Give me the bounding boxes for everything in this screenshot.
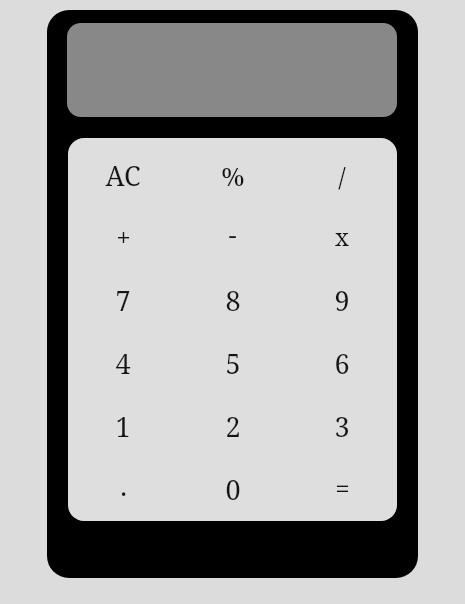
button[interactable]: x xyxy=(287,204,397,269)
button[interactable]: 0 xyxy=(178,458,287,521)
button[interactable]: 2 xyxy=(178,395,287,458)
button[interactable]: AC xyxy=(68,146,178,204)
staticText: 3 xyxy=(334,408,350,445)
staticText: 2 xyxy=(225,408,241,445)
button[interactable]: = xyxy=(287,458,397,521)
button[interactable]: Display xyxy=(67,23,397,117)
button[interactable]: 9 xyxy=(287,269,397,331)
staticText: 5 xyxy=(225,345,241,382)
staticText: 9 xyxy=(334,282,350,319)
button[interactable]: 8 xyxy=(178,269,287,331)
button[interactable]: 6 xyxy=(287,331,397,395)
button[interactable]: 1 xyxy=(68,395,178,458)
staticText: % xyxy=(221,158,245,193)
staticText: 1 xyxy=(115,408,131,445)
staticText: / xyxy=(338,158,346,193)
staticText: = xyxy=(335,470,350,505)
staticText: AC xyxy=(105,157,141,194)
button[interactable]: 3 xyxy=(287,395,397,458)
button[interactable]: / xyxy=(287,146,397,204)
staticText: 6 xyxy=(334,345,350,382)
button[interactable]: - xyxy=(178,204,287,269)
staticText: 7 xyxy=(115,282,131,319)
staticText: 0 xyxy=(225,471,241,508)
button[interactable]: 7 xyxy=(68,269,178,331)
staticText: - xyxy=(228,216,237,251)
staticText: . xyxy=(120,467,127,504)
button[interactable]: 5 xyxy=(178,331,287,395)
button[interactable]: % xyxy=(178,146,287,204)
button[interactable]: + xyxy=(68,204,178,269)
staticText: x xyxy=(335,220,349,253)
staticText: 4 xyxy=(115,345,131,382)
button[interactable]: . xyxy=(68,458,178,521)
staticText: + xyxy=(116,219,131,254)
staticText: 8 xyxy=(225,282,241,319)
button[interactable]: 4 xyxy=(68,331,178,395)
